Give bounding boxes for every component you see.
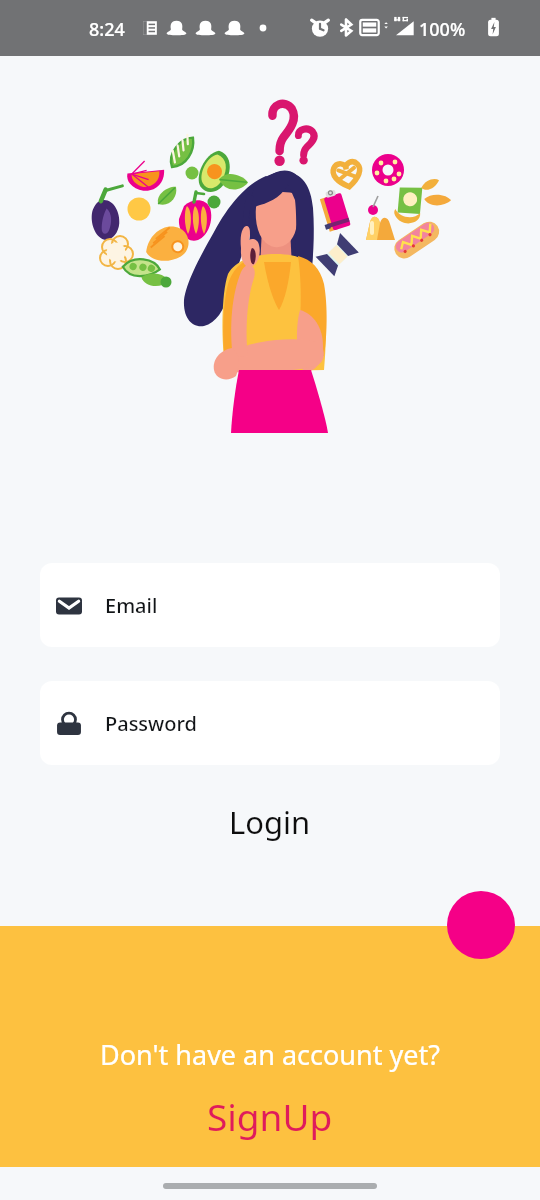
button[interactable]: Password	[40, 681, 500, 765]
button[interactable]: SignUp	[191, 1087, 349, 1145]
staticText: 8:24	[89, 17, 125, 42]
button[interactable]: Email	[40, 563, 500, 647]
staticText: SignUp	[207, 1091, 333, 1141]
button[interactable]: Add	[447, 891, 515, 959]
staticText: Don't have an account yet?	[100, 1036, 440, 1073]
staticText: Email	[105, 592, 158, 619]
staticText: Password	[105, 710, 197, 737]
staticText: 100%	[419, 17, 466, 42]
button[interactable]: Login	[207, 795, 333, 849]
staticText: Login	[229, 801, 311, 843]
